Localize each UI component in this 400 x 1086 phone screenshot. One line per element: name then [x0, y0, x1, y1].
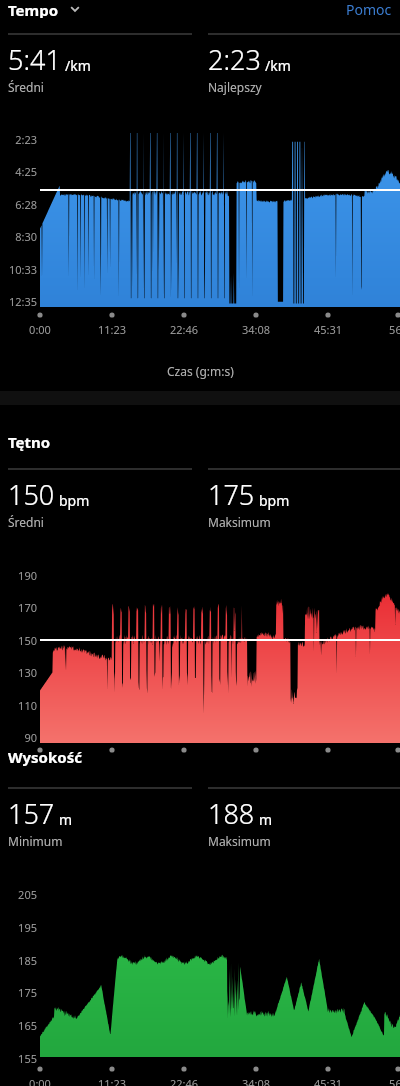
staticText: 2:23: [0, 132, 37, 147]
button[interactable]: 188: [208, 795, 400, 849]
staticText: 175: [208, 476, 255, 513]
staticText: 6:28: [0, 197, 37, 212]
staticText: Pomoc: [346, 0, 392, 18]
other: Zmień wykres: [69, 3, 81, 15]
button[interactable]: Wysokość: [8, 747, 82, 767]
staticText: 188: [208, 795, 255, 832]
staticText: 150: [8, 476, 55, 513]
staticText: 34:08: [234, 322, 278, 337]
staticText: Minimum: [8, 833, 63, 849]
button[interactable]: 2:23: [208, 41, 400, 95]
staticText: 170: [0, 600, 37, 615]
staticText: 34:08: [234, 1076, 278, 1086]
button[interactable]: 157: [8, 795, 200, 849]
staticText: 11:23: [90, 322, 134, 337]
staticText: m: [259, 810, 273, 829]
staticText: 56:5: [378, 1076, 400, 1086]
staticText: 45:31: [306, 1076, 350, 1086]
staticText: 56:5: [378, 322, 400, 337]
staticText: 185: [0, 953, 37, 968]
button[interactable]: 150: [8, 476, 200, 530]
staticText: 0:00: [18, 1076, 62, 1086]
staticText: 12:35: [0, 294, 37, 309]
button[interactable]: Tętno: [8, 432, 51, 452]
staticText: 45:31: [306, 322, 350, 337]
button[interactable]: Tempo: [8, 0, 81, 18]
staticText: 150: [0, 633, 37, 648]
staticText: Średni: [8, 514, 44, 530]
staticText: 0:00: [18, 322, 62, 337]
staticText: bpm: [59, 491, 90, 510]
staticText: Tętno: [8, 432, 51, 452]
staticText: Średni: [8, 79, 44, 95]
staticText: 4:25: [0, 164, 37, 179]
staticText: 10:33: [0, 262, 37, 277]
staticText: Maksimum: [208, 514, 271, 530]
staticText: 165: [0, 1018, 37, 1033]
staticText: 5:41: [8, 41, 61, 78]
staticText: 2:23: [208, 41, 261, 78]
button[interactable]: Pomoc: [346, 0, 392, 18]
staticText: Czas (g:m:s): [167, 363, 234, 379]
staticText: 190: [0, 568, 37, 583]
staticText: 11:23: [90, 1076, 134, 1086]
staticText: 22:46: [162, 322, 206, 337]
staticText: 8:30: [0, 229, 37, 244]
staticText: 195: [0, 920, 37, 935]
button[interactable]: 5:41: [8, 41, 200, 95]
staticText: /km: [265, 56, 291, 75]
staticText: 90: [0, 730, 37, 745]
staticText: Tempo: [8, 0, 59, 18]
staticText: Najlepszy: [208, 79, 262, 95]
button[interactable]: 175: [208, 476, 400, 530]
staticText: 205: [0, 887, 37, 902]
staticText: 110: [0, 698, 37, 713]
staticText: 130: [0, 665, 37, 680]
staticText: Wysokość: [8, 747, 82, 767]
staticText: 157: [8, 795, 55, 832]
staticText: m: [59, 810, 73, 829]
staticText: 22:46: [162, 1076, 206, 1086]
staticText: bpm: [259, 491, 290, 510]
staticText: /km: [65, 56, 91, 75]
staticText: 155: [0, 1051, 37, 1066]
staticText: Maksimum: [208, 833, 271, 849]
staticText: 175: [0, 985, 37, 1000]
